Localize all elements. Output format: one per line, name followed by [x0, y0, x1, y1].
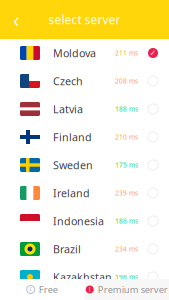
staticText: Indonesia [53, 214, 104, 228]
staticText: ✓ [149, 48, 156, 58]
button[interactable]: Moldova [0, 39, 169, 67]
staticText: 208 ms [115, 77, 138, 85]
button[interactable]: Back [4, 7, 28, 31]
button[interactable]: Kazakhstan [0, 263, 169, 291]
button[interactable]: Indonesia [0, 207, 169, 235]
button[interactable]: Brazil [0, 235, 169, 263]
staticText: Moldova [53, 46, 96, 60]
staticText: 211 ms [115, 49, 138, 57]
staticText: 210 ms [115, 133, 138, 141]
button[interactable]: F [0, 279, 84, 300]
button[interactable]: Czech [0, 67, 169, 95]
staticText: Premium server [98, 283, 168, 296]
button[interactable]: Latvia [0, 95, 169, 123]
staticText: Kazakhstan [53, 270, 112, 284]
button[interactable]: Finland [0, 123, 169, 151]
staticText: Ireland [53, 186, 90, 200]
staticText: 175 ms [115, 161, 138, 169]
staticText: 186 ms [115, 217, 138, 225]
staticText: 188 ms [115, 105, 138, 113]
staticText: 198 ms [115, 273, 138, 281]
staticText: Sweden [53, 158, 93, 172]
staticText: Czech [53, 74, 83, 88]
staticText: F [29, 286, 32, 293]
staticText: Latvia [53, 102, 83, 116]
staticText: ‹ [13, 6, 19, 33]
staticText: Finland [53, 130, 92, 144]
button[interactable]: Ireland [0, 179, 169, 207]
staticText: 239 ms [115, 189, 138, 197]
button[interactable]: ! [84, 279, 169, 300]
staticText: Brazil [53, 242, 81, 256]
staticText: Free [39, 283, 58, 296]
staticText: 234 ms [115, 245, 138, 253]
staticText: select server [48, 11, 120, 27]
button[interactable]: Sweden [0, 151, 169, 179]
staticText: ! [89, 285, 91, 294]
